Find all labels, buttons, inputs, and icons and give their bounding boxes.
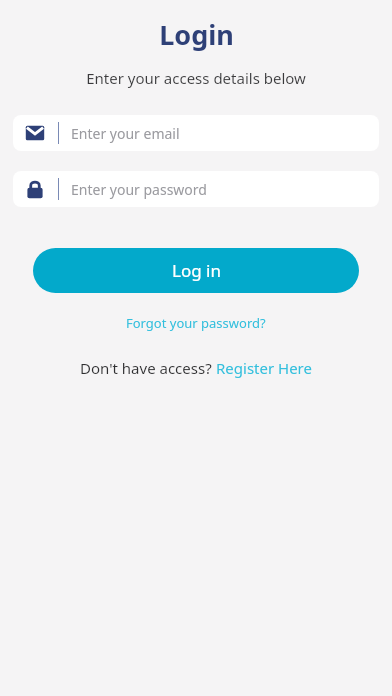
staticText: Login bbox=[159, 16, 234, 53]
staticText: Log in bbox=[172, 259, 221, 282]
button[interactable]: Password bbox=[13, 171, 379, 207]
button[interactable]: Forgot your password? bbox=[120, 312, 272, 334]
other: Email bbox=[24, 122, 46, 144]
staticText: Enter your password bbox=[71, 180, 207, 199]
staticText: Enter your access details below bbox=[86, 68, 306, 88]
staticText: Register Here bbox=[216, 358, 312, 378]
button[interactable]: Email bbox=[13, 115, 379, 151]
staticText: Forgot your password? bbox=[126, 314, 266, 332]
staticText: Don't have access? bbox=[80, 358, 216, 378]
staticText: Enter your email bbox=[71, 124, 180, 143]
other: Password bbox=[24, 178, 46, 200]
button[interactable]: Log in bbox=[33, 248, 359, 293]
button[interactable]: Register Here bbox=[216, 358, 312, 378]
